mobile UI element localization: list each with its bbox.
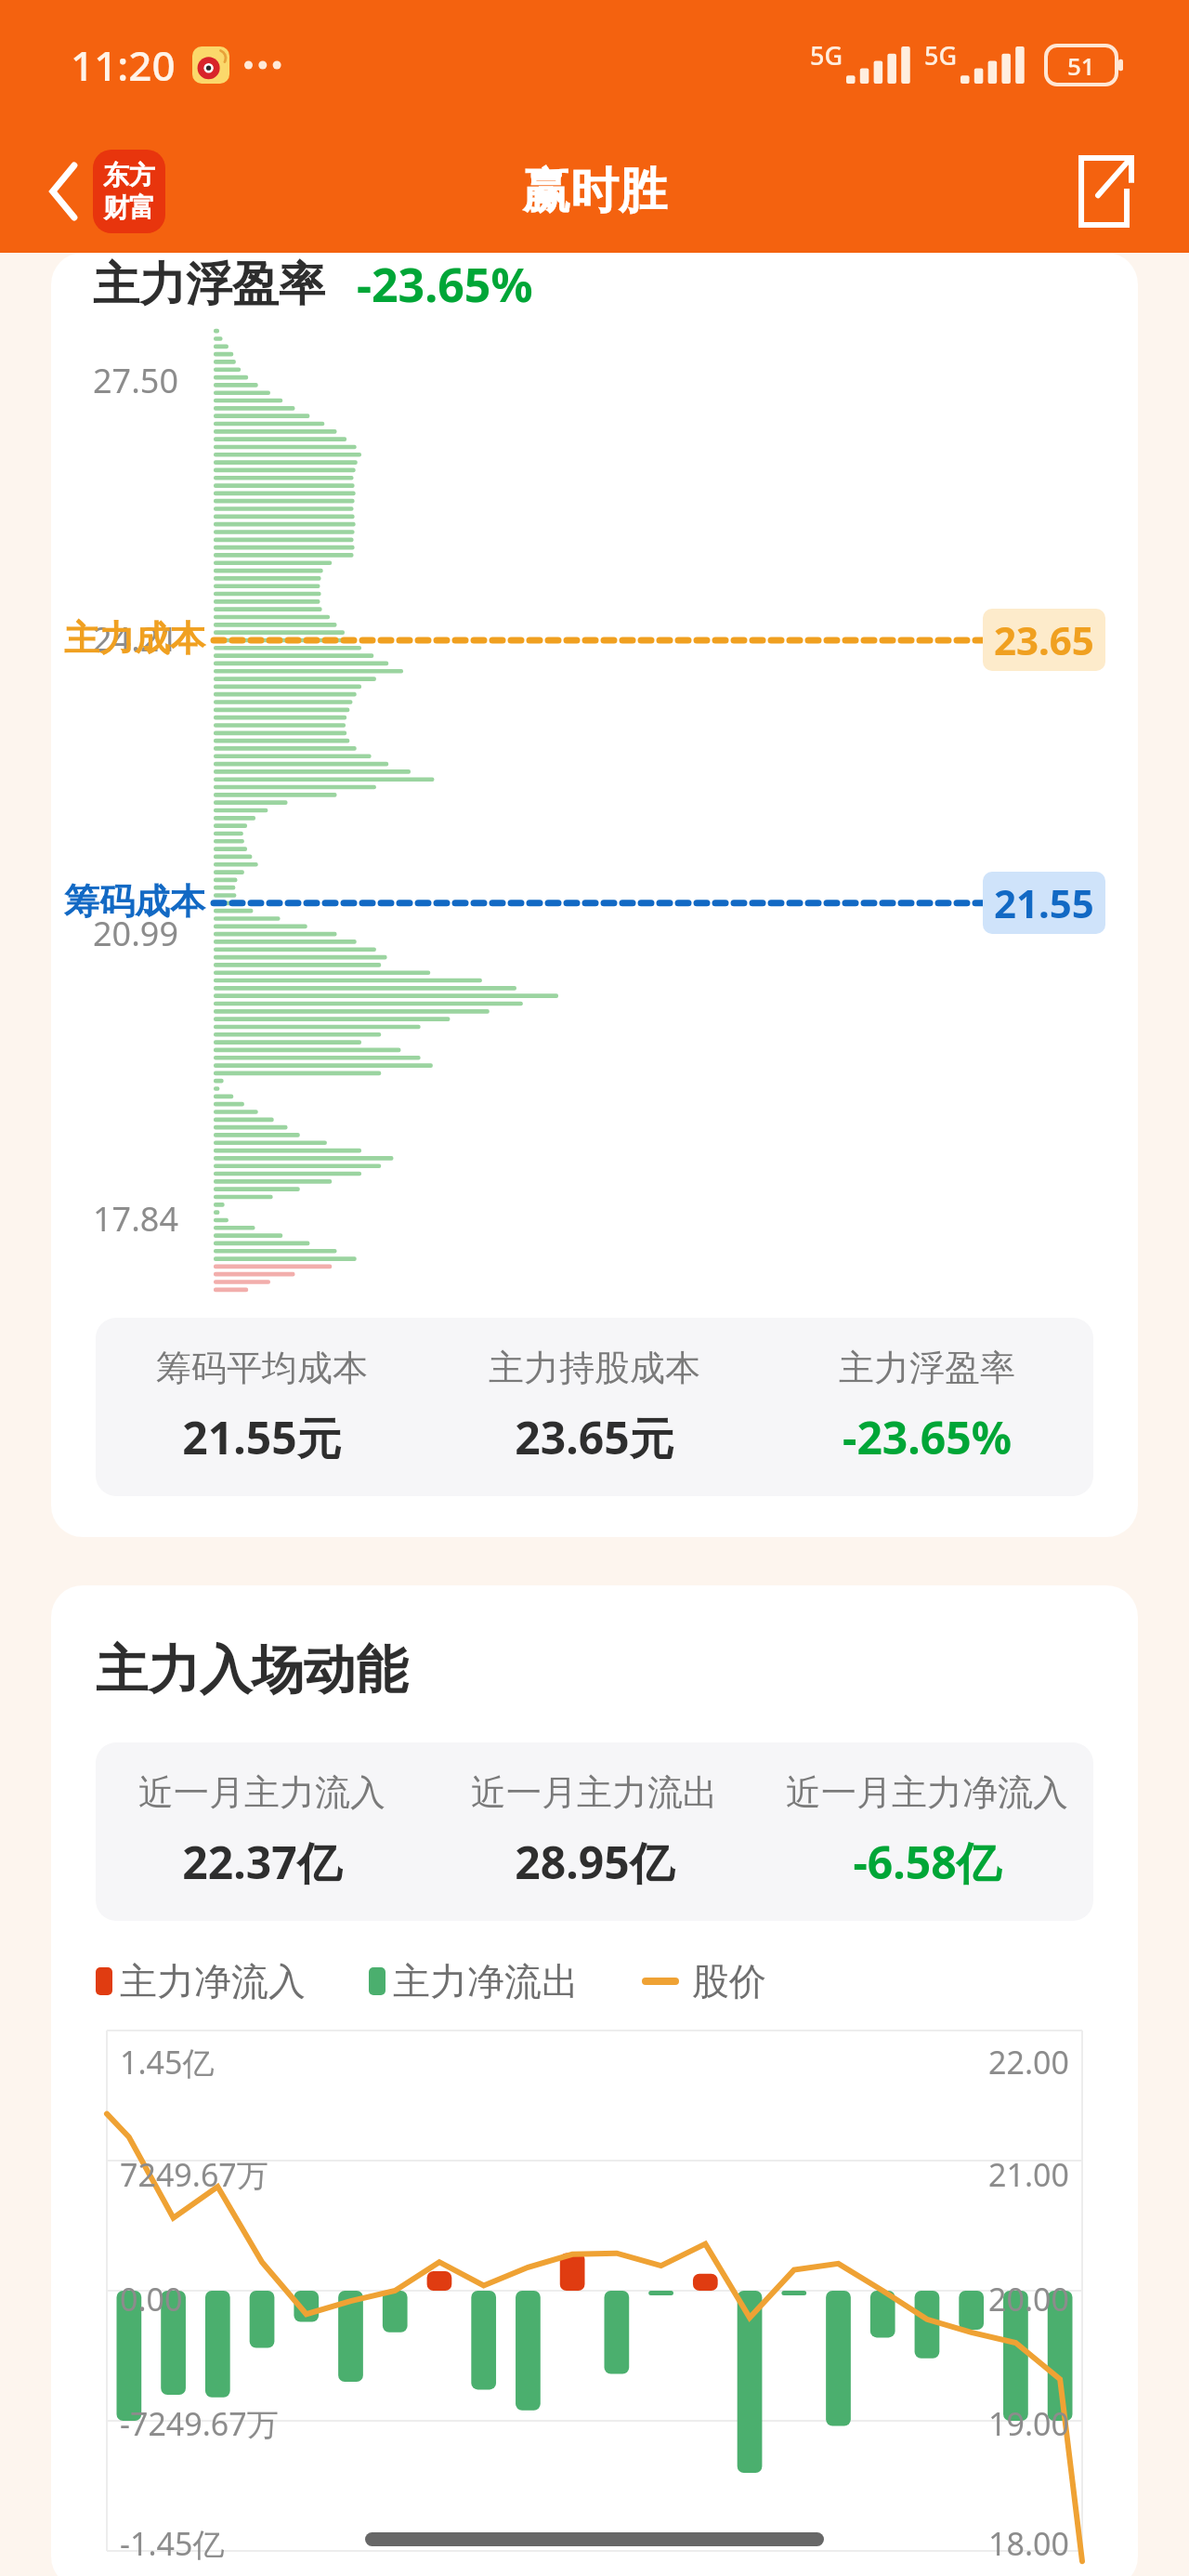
staticText: 0.00 [120,2278,183,2320]
staticText: -6.58亿 [853,1832,1001,1893]
staticText: 24.21 [93,616,179,662]
staticText: 股价 [692,1958,766,2004]
staticText: 7249.67万 [120,2153,268,2196]
staticText: 东方 [103,159,155,191]
button[interactable]: 分享 [1061,145,1144,238]
staticText: 筹码平均成本 [156,1346,368,1390]
staticText: -7249.67万 [120,2402,279,2445]
staticText: 22.00 [988,2041,1069,2083]
staticText: -23.65% [843,1407,1012,1467]
staticText: 主力净流出 [393,1958,579,2004]
staticText: -1.45亿 [120,2522,225,2565]
staticText: 21.00 [988,2153,1069,2196]
staticText: 筹码成本 [64,879,205,924]
staticText: 20.99 [93,911,179,956]
staticText: 主力成本 [64,616,205,661]
staticText: 17.84 [93,1196,179,1242]
staticText: 主力浮盈率 [93,256,325,314]
staticText: 5G [810,38,843,72]
staticText: 51 [1067,49,1095,82]
staticText: 近一月主力流出 [471,1770,718,1815]
staticText: 主力净流入 [120,1958,306,2004]
staticText: 财富 [103,191,155,224]
staticText: 28.95亿 [515,1832,674,1893]
staticText: 19.00 [988,2402,1069,2445]
staticText: -23.65% [357,253,533,316]
staticText: 21.55 [994,876,1094,929]
staticText: 23.65 [994,613,1094,666]
staticText: 主力持股成本 [489,1346,700,1390]
staticText: 近一月主力净流入 [786,1770,1068,1815]
staticText: 22.37亿 [182,1832,342,1893]
staticText: 27.50 [93,358,179,403]
staticText: 1.45亿 [120,2041,215,2083]
staticText: 赢时胜 [522,161,667,222]
staticText: 21.55元 [182,1407,342,1468]
staticText: 5G [924,38,958,72]
staticText: 20.00 [988,2278,1069,2320]
staticText: 23.65元 [515,1407,674,1468]
button[interactable]: 返回 东方财富 [37,142,176,241]
staticText: 11:20 [71,37,176,93]
staticText: 主力浮盈率 [839,1346,1015,1390]
staticText: 主力入场动能 [96,1637,408,1703]
staticText: 近一月主力流入 [138,1770,385,1815]
staticText: 18.00 [988,2522,1069,2565]
